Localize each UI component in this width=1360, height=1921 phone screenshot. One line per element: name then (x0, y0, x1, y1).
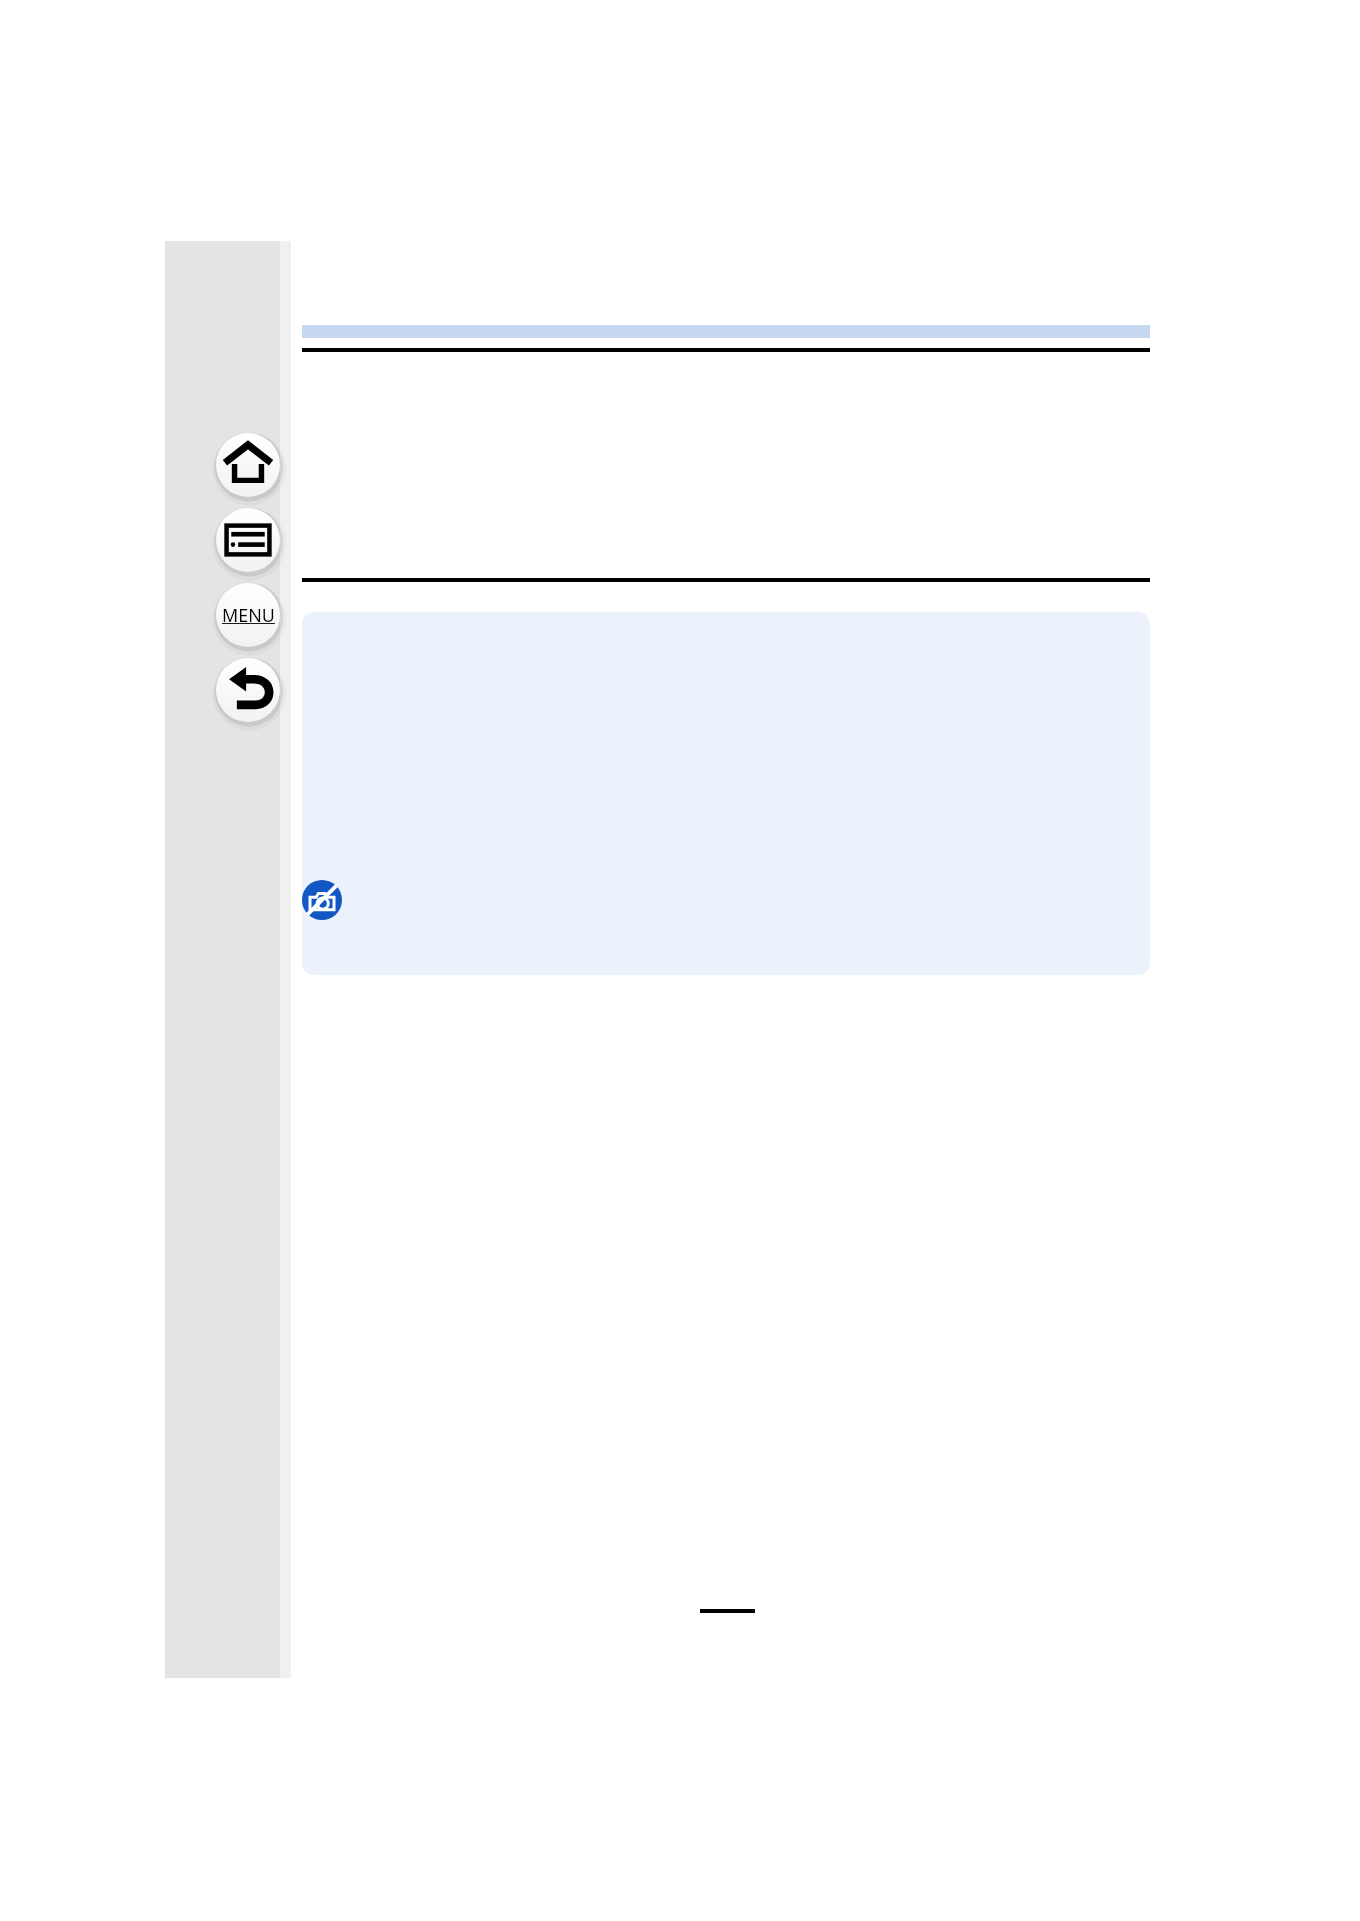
button[interactable]: Back (208, 650, 288, 730)
button[interactable]: Home (208, 425, 288, 505)
button[interactable]: Table of contents (208, 500, 288, 580)
button[interactable]: Menu (208, 575, 288, 655)
staticText: MENU (222, 603, 275, 627)
